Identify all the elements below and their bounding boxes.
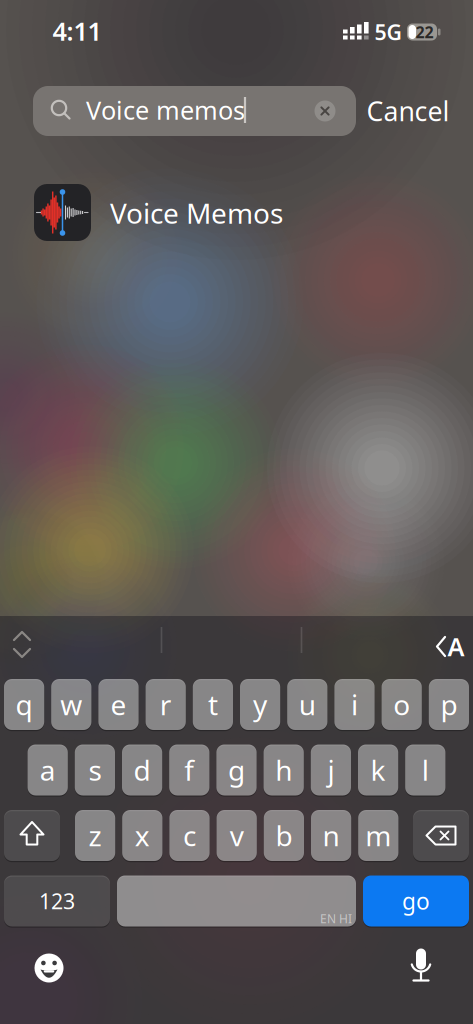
staticText: h bbox=[275, 751, 292, 789]
staticText: EN HI bbox=[320, 910, 352, 926]
staticText: A bbox=[447, 630, 464, 663]
button[interactable]: f bbox=[169, 744, 209, 795]
button[interactable]: r bbox=[146, 679, 186, 730]
staticText: b bbox=[275, 817, 292, 854]
button[interactable]: Delete bbox=[413, 810, 469, 861]
staticText: g bbox=[228, 751, 245, 789]
staticText: 5G bbox=[374, 18, 401, 46]
staticText: go bbox=[402, 886, 430, 916]
button[interactable]: v bbox=[217, 810, 257, 861]
button[interactable]: e bbox=[98, 679, 139, 730]
button[interactable]: k bbox=[358, 744, 398, 795]
staticText: c bbox=[183, 817, 196, 854]
button[interactable]: t bbox=[193, 679, 233, 730]
staticText: s bbox=[88, 751, 101, 789]
button[interactable]: g bbox=[216, 744, 257, 795]
button[interactable]: Space bbox=[117, 875, 356, 926]
staticText: d bbox=[134, 751, 151, 789]
staticText: Voice Memos bbox=[110, 194, 283, 232]
button[interactable]: b bbox=[264, 810, 304, 861]
staticText: 4:11 bbox=[52, 14, 101, 48]
button[interactable]: l bbox=[405, 744, 445, 795]
button[interactable]: d bbox=[122, 744, 162, 795]
staticText: 22 bbox=[415, 21, 433, 43]
staticText: y bbox=[253, 686, 267, 723]
button[interactable]: Emoji bbox=[27, 946, 71, 990]
staticText: k bbox=[371, 751, 386, 789]
button[interactable]: x bbox=[122, 810, 162, 861]
button[interactable]: Voice Memos bbox=[0, 162, 473, 262]
button[interactable]: Clear text bbox=[310, 96, 340, 126]
staticText: j bbox=[327, 751, 334, 789]
button[interactable]: go bbox=[363, 875, 469, 926]
staticText: u bbox=[299, 686, 316, 723]
staticText: q bbox=[16, 686, 33, 723]
button[interactable]: m bbox=[358, 810, 398, 861]
button[interactable]: s bbox=[75, 744, 115, 795]
staticText: e bbox=[110, 686, 126, 723]
button[interactable]: Collapse suggestions bbox=[0, 616, 44, 673]
button[interactable]: a bbox=[28, 744, 68, 795]
staticText: i bbox=[351, 686, 358, 723]
button[interactable]: z bbox=[75, 810, 115, 861]
button[interactable]: Switch keyboard bbox=[428, 616, 472, 673]
staticText: n bbox=[323, 817, 340, 854]
button[interactable]: h bbox=[264, 744, 304, 795]
button[interactable]: Voice memos bbox=[33, 86, 356, 136]
button[interactable]: 123 bbox=[4, 875, 110, 926]
staticText: v bbox=[230, 817, 244, 854]
staticText: z bbox=[89, 817, 102, 854]
staticText: o bbox=[393, 686, 410, 723]
button[interactable]: j bbox=[311, 744, 351, 795]
button[interactable]: c bbox=[169, 810, 210, 861]
staticText: r bbox=[160, 686, 172, 723]
button[interactable]: p bbox=[429, 679, 469, 730]
staticText: 123 bbox=[39, 887, 75, 915]
button[interactable]: u bbox=[287, 679, 327, 730]
staticText: m bbox=[365, 817, 391, 854]
staticText: w bbox=[60, 686, 82, 723]
button[interactable]: y bbox=[240, 679, 280, 730]
button[interactable]: i bbox=[334, 679, 375, 730]
staticText: a bbox=[40, 751, 56, 789]
button[interactable]: Shift bbox=[4, 810, 60, 861]
button[interactable]: n bbox=[311, 810, 351, 861]
button[interactable]: w bbox=[51, 679, 91, 730]
staticText: Voice memos bbox=[86, 93, 245, 127]
staticText: Cancel bbox=[366, 93, 449, 129]
button[interactable]: q bbox=[4, 679, 44, 730]
button[interactable]: Dictation bbox=[399, 944, 443, 988]
staticText: t bbox=[208, 686, 218, 723]
button[interactable]: Cancel bbox=[360, 86, 456, 136]
button[interactable]: o bbox=[382, 679, 422, 730]
staticText: x bbox=[135, 817, 150, 854]
staticText: l bbox=[422, 751, 429, 789]
staticText: p bbox=[440, 686, 457, 723]
staticText: f bbox=[184, 751, 194, 789]
